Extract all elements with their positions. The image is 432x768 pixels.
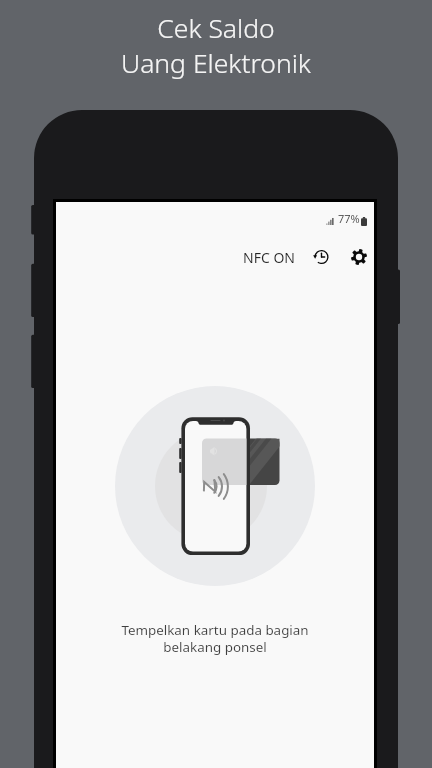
- button[interactable]: NFC ON: [240, 242, 298, 273]
- staticText: NFC ON: [243, 248, 295, 267]
- staticText: 77%: [338, 211, 360, 226]
- button[interactable]: History: [305, 241, 337, 273]
- button[interactable]: Settings: [343, 241, 375, 273]
- staticText: Tempelkan kartu pada bagian belakang pon…: [121, 621, 309, 655]
- staticText: Cek Saldo Uang Elektronik: [121, 10, 311, 81]
